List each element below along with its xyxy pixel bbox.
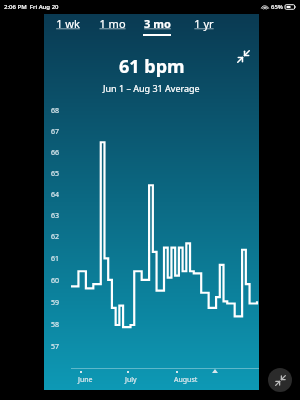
staticText: July — [125, 375, 137, 385]
staticText: 65 — [51, 169, 60, 179]
staticText: 1 yr — [194, 16, 214, 31]
staticText: 58 — [51, 320, 60, 330]
staticText: 1 wk — [56, 16, 80, 31]
staticText: 3 mo — [144, 16, 171, 31]
staticText: August — [174, 375, 198, 385]
staticText: 65% — [271, 3, 283, 11]
button[interactable]: 3 mo — [138, 16, 176, 38]
staticText: 64 — [51, 190, 60, 200]
button[interactable]: 1 wk — [49, 16, 87, 38]
staticText: June — [78, 375, 93, 385]
staticText: 57 — [51, 342, 60, 352]
button[interactable]: 1 mo — [93, 16, 131, 38]
staticText: 63 — [51, 211, 60, 221]
staticText: 67 — [51, 127, 60, 137]
button[interactable]: Collapse chart — [233, 46, 253, 66]
staticText: 62 — [51, 232, 60, 242]
staticText: 60 — [51, 276, 60, 286]
button[interactable]: Resize window — [268, 368, 292, 392]
staticText: 1 mo — [99, 16, 126, 31]
staticText: 2:06 PM Fri Aug 20 — [4, 3, 59, 11]
staticText: 59 — [51, 298, 60, 308]
staticText: 66 — [51, 148, 60, 158]
button[interactable]: 1 yr — [185, 16, 223, 38]
staticText: 61 bpm — [119, 54, 185, 79]
staticText: 68 — [51, 106, 60, 116]
staticText: 61 — [51, 254, 60, 264]
staticText: Jun 1 – Aug 31 Average — [103, 82, 200, 94]
